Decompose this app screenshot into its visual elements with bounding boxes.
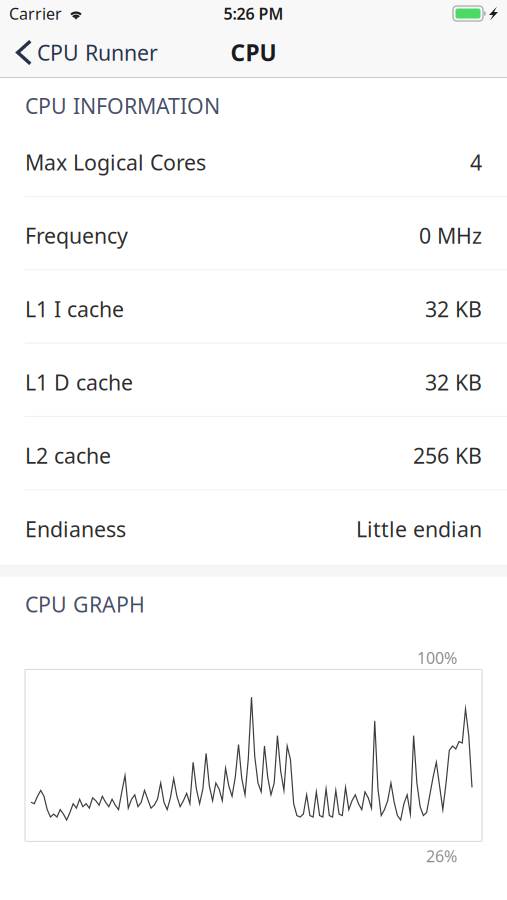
staticText: 256 KB xyxy=(413,441,482,470)
staticText: 26% xyxy=(426,845,457,867)
staticText: Carrier xyxy=(9,3,62,24)
staticText: CPU Runner xyxy=(37,38,158,67)
staticText: 0 MHz xyxy=(419,221,482,250)
staticText: L1 I cache xyxy=(25,295,124,323)
staticText: 32 KB xyxy=(425,368,482,396)
staticText: CPU xyxy=(230,37,276,67)
staticText: Endianess xyxy=(25,515,126,543)
staticText: 5:26 PM xyxy=(223,3,283,24)
button[interactable]: CPU Runner xyxy=(0,27,170,78)
staticText: Max Logical Cores xyxy=(25,148,206,176)
staticText: 32 KB xyxy=(425,295,482,323)
staticText: 4 xyxy=(470,148,482,176)
staticText: 100% xyxy=(417,647,457,668)
staticText: L2 cache xyxy=(25,441,111,470)
staticText: Frequency xyxy=(25,221,128,250)
staticText: Little endian xyxy=(356,515,482,543)
staticText: CPU GRAPH xyxy=(25,590,145,618)
staticText: CPU INFORMATION xyxy=(25,91,220,120)
staticText: L1 D cache xyxy=(25,368,133,396)
